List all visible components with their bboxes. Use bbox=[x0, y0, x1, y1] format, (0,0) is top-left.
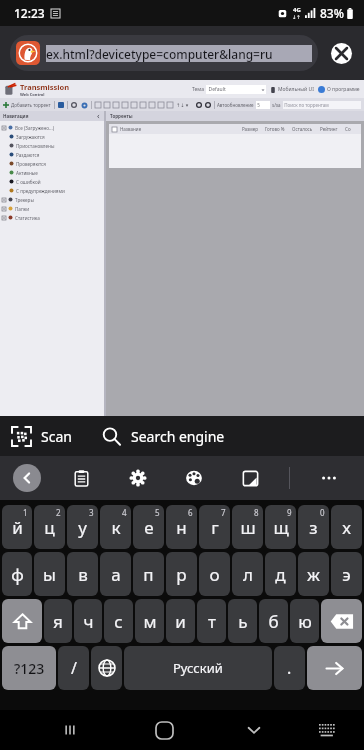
button[interactable]: ч bbox=[74, 599, 102, 643]
button[interactable]: я bbox=[44, 599, 72, 643]
button[interactable]: о bbox=[199, 552, 230, 596]
button[interactable]: Home bbox=[144, 710, 184, 750]
staticText: 1 bbox=[23, 507, 28, 518]
button[interactable]: С ошибкой bbox=[0, 177, 104, 186]
staticText: н bbox=[176, 516, 187, 539]
button[interactable]: 5 bbox=[256, 101, 270, 109]
button[interactable]: Проверяются bbox=[0, 159, 104, 168]
staticText: щ bbox=[273, 516, 289, 539]
staticText: Добавить торрент bbox=[11, 102, 51, 108]
staticText: Search engine bbox=[131, 427, 225, 446]
button[interactable]: Clipboard bbox=[64, 461, 98, 495]
staticText: а bbox=[111, 563, 121, 586]
button[interactable]: Theme bbox=[177, 461, 211, 495]
staticText: з bbox=[309, 516, 318, 539]
button[interactable]: к bbox=[100, 505, 131, 549]
button[interactable]: д bbox=[265, 552, 296, 596]
button[interactable]: щ bbox=[265, 505, 296, 549]
button[interactable]: Recent apps bbox=[50, 710, 90, 750]
button[interactable]: Search engine bbox=[96, 421, 231, 452]
staticText: ж bbox=[307, 563, 320, 586]
staticText: Default bbox=[206, 86, 226, 93]
button[interactable]: й bbox=[2, 505, 32, 549]
button[interactable]: Bookmarks bbox=[233, 461, 267, 495]
staticText: С ошибкой bbox=[16, 179, 41, 185]
button[interactable]: э bbox=[331, 552, 362, 596]
staticText: / bbox=[71, 657, 77, 679]
button[interactable]: е bbox=[133, 505, 164, 549]
staticText: Торренты bbox=[110, 113, 133, 119]
button[interactable]: в bbox=[67, 552, 98, 596]
button[interactable]: ?123 bbox=[2, 646, 56, 690]
button[interactable]: и bbox=[166, 599, 195, 643]
staticText: Рейтинг bbox=[320, 126, 338, 132]
button[interactable]: Загружаются bbox=[0, 132, 104, 141]
button[interactable]: Settings bbox=[121, 461, 155, 495]
staticText: р bbox=[176, 563, 187, 586]
button[interactable]: ж bbox=[298, 552, 329, 596]
button[interactable]: Статистика bbox=[0, 213, 104, 222]
staticText: т bbox=[208, 610, 216, 633]
button[interactable]: Scan bbox=[0, 421, 82, 452]
button[interactable]: м bbox=[135, 599, 164, 643]
button[interactable]: . bbox=[274, 646, 305, 690]
button[interactable]: Change language bbox=[91, 646, 122, 690]
button[interactable]: з bbox=[298, 505, 329, 549]
button[interactable]: Поиск по торрентам bbox=[283, 101, 361, 109]
button[interactable]: р bbox=[166, 552, 197, 596]
staticText: Приостановлены bbox=[16, 143, 55, 149]
button[interactable]: ф bbox=[2, 552, 32, 596]
button[interactable]: Clear address bbox=[326, 38, 356, 68]
staticText: Трекеры bbox=[15, 197, 34, 203]
button[interactable]: Shift bbox=[2, 599, 42, 643]
staticText: ф bbox=[11, 563, 24, 586]
staticText: с bbox=[114, 610, 123, 633]
button[interactable]: Трекеры bbox=[0, 195, 104, 204]
staticText: ex.html?devicetype=computer&lang=ru bbox=[46, 46, 273, 62]
staticText: Навигация bbox=[3, 113, 29, 119]
button[interactable]: г bbox=[199, 505, 230, 549]
button[interactable]: х bbox=[331, 505, 362, 549]
staticText: ↑↓ ▾ bbox=[176, 102, 189, 109]
staticText: Мобильный UI bbox=[278, 86, 314, 93]
staticText: Папки bbox=[15, 206, 29, 212]
button[interactable]: Default bbox=[206, 85, 266, 94]
button[interactable]: ы bbox=[34, 552, 65, 596]
button[interactable]: Приостановлены bbox=[0, 141, 104, 150]
button[interactable]: Keyboard layout bbox=[307, 710, 347, 750]
button[interactable]: ц bbox=[34, 505, 65, 549]
button[interactable]: у bbox=[67, 505, 98, 549]
button[interactable]: Back bbox=[13, 464, 41, 492]
button[interactable]: л bbox=[232, 552, 263, 596]
button[interactable]: / bbox=[58, 646, 89, 690]
button[interactable]: ex.html?devicetype=computer&lang=ru bbox=[10, 35, 318, 71]
staticText: к bbox=[111, 516, 121, 539]
button[interactable]: Русский bbox=[124, 646, 272, 690]
button[interactable]: Активные bbox=[0, 168, 104, 177]
button[interactable]: Папки bbox=[0, 204, 104, 213]
button[interactable]: Hide keyboard bbox=[234, 710, 274, 750]
staticText: ц bbox=[44, 516, 55, 539]
button[interactable]: ю bbox=[290, 599, 319, 643]
button[interactable]: С предупреждениями bbox=[0, 186, 104, 195]
button[interactable]: Все (Загружено...) bbox=[0, 123, 104, 132]
button[interactable]: а bbox=[100, 552, 131, 596]
button[interactable]: ь bbox=[228, 599, 257, 643]
button[interactable]: т bbox=[197, 599, 226, 643]
button[interactable]: More options bbox=[312, 461, 346, 495]
button[interactable]: н bbox=[166, 505, 197, 549]
button[interactable]: Go bbox=[307, 646, 362, 690]
staticText: в bbox=[78, 563, 88, 586]
button[interactable]: Раздаются bbox=[0, 150, 104, 159]
button[interactable]: Backspace bbox=[321, 599, 362, 643]
staticText: С предупреждениями bbox=[16, 188, 65, 194]
staticText: ы bbox=[43, 563, 56, 586]
button[interactable]: ш bbox=[232, 505, 263, 549]
button[interactable]: б bbox=[259, 599, 288, 643]
staticText: 2 bbox=[56, 507, 61, 518]
button[interactable]: п bbox=[133, 552, 164, 596]
button[interactable]: с bbox=[104, 599, 133, 643]
staticText: . bbox=[287, 657, 292, 679]
staticText: Все (Загружено...) bbox=[15, 125, 55, 131]
staticText: Загружаются bbox=[16, 134, 45, 140]
